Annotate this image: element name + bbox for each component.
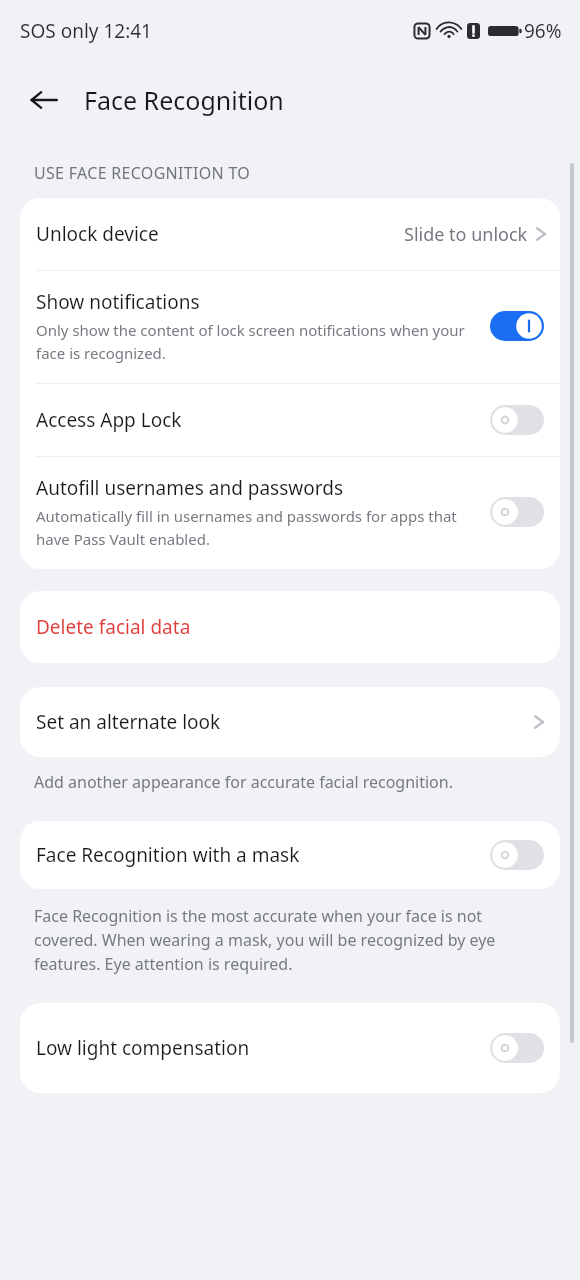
button[interactable]: Access App Lock bbox=[490, 405, 544, 435]
staticText: Show notifications bbox=[36, 289, 200, 315]
staticText: Autofill usernames and passwords bbox=[36, 475, 344, 501]
staticText: Only show the content of lock screen not… bbox=[36, 320, 472, 363]
staticText: Access App Lock bbox=[36, 407, 182, 433]
button[interactable]: Show notifications bbox=[490, 311, 544, 341]
staticText: Slide to unlock bbox=[404, 222, 528, 247]
button[interactable]: Delete facial data bbox=[20, 591, 560, 663]
staticText: Low light compensation bbox=[36, 1035, 250, 1061]
staticText: Face Recognition bbox=[84, 83, 284, 117]
staticText: 96% bbox=[524, 18, 562, 44]
button[interactable]: Face Recognition with a mask bbox=[20, 821, 560, 889]
staticText: Set an alternate look bbox=[36, 709, 221, 735]
button[interactable]: Low light compensation bbox=[490, 1033, 544, 1063]
staticText: Face Recognition is the most accurate wh… bbox=[34, 905, 546, 975]
button[interactable]: Access App Lock bbox=[20, 384, 560, 456]
button[interactable]: Low light compensation bbox=[20, 1003, 560, 1093]
staticText: Delete facial data bbox=[36, 614, 191, 640]
button[interactable]: Show notifications bbox=[20, 271, 560, 383]
staticText: Add another appearance for accurate faci… bbox=[34, 771, 453, 793]
staticText: Automatically fill in usernames and pass… bbox=[36, 506, 472, 549]
staticText: Face Recognition with a mask bbox=[36, 842, 300, 868]
button[interactable]: Autofill usernames and passwords bbox=[490, 497, 544, 527]
staticText: USE FACE RECOGNITION TO bbox=[34, 162, 251, 184]
button[interactable]: Unlock device bbox=[20, 198, 560, 270]
button[interactable]: Set an alternate look bbox=[20, 687, 560, 757]
staticText: Unlock device bbox=[36, 221, 159, 247]
button[interactable]: Face Recognition with a mask bbox=[490, 840, 544, 870]
button[interactable]: Autofill usernames and passwords bbox=[20, 457, 560, 569]
button[interactable]: Back bbox=[22, 78, 66, 122]
staticText: SOS only 12:41 bbox=[20, 18, 152, 44]
